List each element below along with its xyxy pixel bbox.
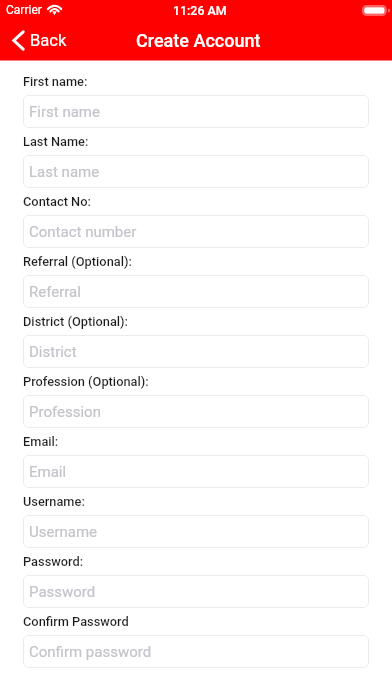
button[interactable]: District (23, 335, 369, 368)
button[interactable]: Confirm password (23, 635, 369, 668)
staticText: Password: (23, 554, 84, 569)
other: Back (12, 30, 25, 51)
button[interactable]: Password (23, 575, 369, 608)
button[interactable]: First name (23, 95, 369, 128)
staticText: Username (29, 523, 98, 541)
staticText: Password (29, 583, 96, 601)
staticText: Last Name: (23, 134, 89, 149)
staticText: Contact No: (23, 194, 91, 209)
button[interactable]: Email (23, 455, 369, 488)
staticText: Last name (29, 163, 100, 181)
staticText: District (29, 343, 77, 361)
staticText: Email (29, 463, 67, 481)
staticText: Profession (Optional): (23, 374, 149, 389)
staticText: Username: (23, 494, 85, 509)
staticText: 11:26 AM (173, 3, 227, 18)
staticText: Carrier (6, 3, 42, 17)
button[interactable]: Username (23, 515, 369, 548)
button[interactable]: Last name (23, 155, 369, 188)
staticText: Email: (23, 434, 59, 449)
staticText: Referral (29, 283, 81, 301)
button[interactable]: Referral (23, 275, 369, 308)
staticText: Profession (29, 403, 101, 421)
staticText: District (Optional): (23, 314, 128, 329)
other: Battery full (362, 5, 387, 16)
staticText: Referral (Optional): (23, 254, 132, 269)
button[interactable]: Back (0, 24, 79, 57)
staticText: Confirm Password (23, 614, 129, 629)
staticText: Confirm password (29, 643, 152, 661)
button[interactable]: Profession (23, 395, 369, 428)
staticText: Back (30, 31, 67, 50)
staticText: First name (29, 103, 100, 121)
staticText: Contact number (29, 223, 137, 241)
staticText: First name: (23, 74, 88, 89)
button[interactable]: Contact number (23, 215, 369, 248)
staticText: Create Account (136, 30, 261, 51)
